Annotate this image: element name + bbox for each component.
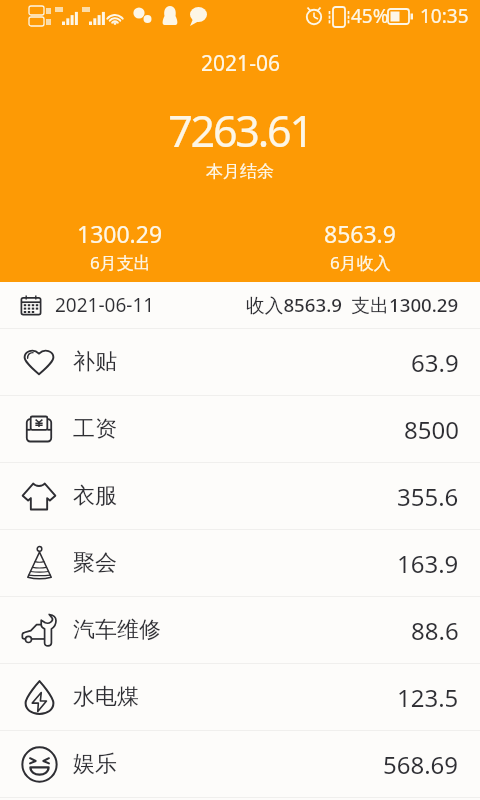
staticText: 收入8563.9 支出1300.29 <box>246 292 459 318</box>
staticText: 8563.9 <box>324 218 396 249</box>
button[interactable]: 7263.61 <box>125 101 355 182</box>
other: Calendar <box>21 295 41 315</box>
button[interactable]: 补贴 <box>0 329 480 396</box>
staticText: 88.6 <box>411 614 459 647</box>
button[interactable]: 聚会 <box>0 530 480 597</box>
staticText: 568.69 <box>383 748 459 781</box>
staticText: 6月收入 <box>330 251 391 274</box>
staticText: 补贴 <box>73 348 117 376</box>
staticText: 123.5 <box>397 681 459 714</box>
button[interactable]: 衣服 <box>0 463 480 530</box>
button[interactable]: 水电煤 <box>0 664 480 731</box>
staticText: 355.6 <box>397 480 459 513</box>
staticText: 45% <box>351 3 389 29</box>
staticText: 衣服 <box>73 482 117 510</box>
other: 工资 <box>26 416 52 442</box>
button[interactable]: 汽车维修 <box>0 597 480 664</box>
staticText: 7263.61 <box>125 101 355 160</box>
staticText: 2021-06 <box>201 49 280 78</box>
staticText: 工资 <box>73 415 117 443</box>
button[interactable]: 8563.9 <box>240 212 480 280</box>
staticText: 6月支出 <box>90 251 151 274</box>
other: 汽车维修 <box>22 614 56 646</box>
staticText: 汽车维修 <box>73 616 161 644</box>
button[interactable]: 1300.29 <box>0 212 240 280</box>
staticText: 163.9 <box>397 547 459 580</box>
staticText: 娱乐 <box>73 750 117 778</box>
button[interactable]: 娱乐 <box>0 731 480 798</box>
staticText: 63.9 <box>411 346 459 379</box>
staticText: 10:35 <box>420 3 469 29</box>
staticText: 2021-06-11 <box>55 292 155 318</box>
other: 聚会 <box>27 546 52 580</box>
other: 衣服 <box>22 483 56 510</box>
other: 水电煤 <box>25 680 54 715</box>
staticText: 本月结余 <box>125 161 355 182</box>
button[interactable]: Calendar <box>0 282 480 328</box>
staticText: 8500 <box>404 413 459 446</box>
other: 娱乐 <box>22 747 57 782</box>
button[interactable]: 2021-06 <box>170 48 310 78</box>
other: 补贴 <box>24 349 54 375</box>
staticText: 水电煤 <box>73 683 139 711</box>
staticText: 聚会 <box>73 549 117 577</box>
staticText: 1300.29 <box>77 218 163 249</box>
button[interactable]: 工资 <box>0 396 480 463</box>
